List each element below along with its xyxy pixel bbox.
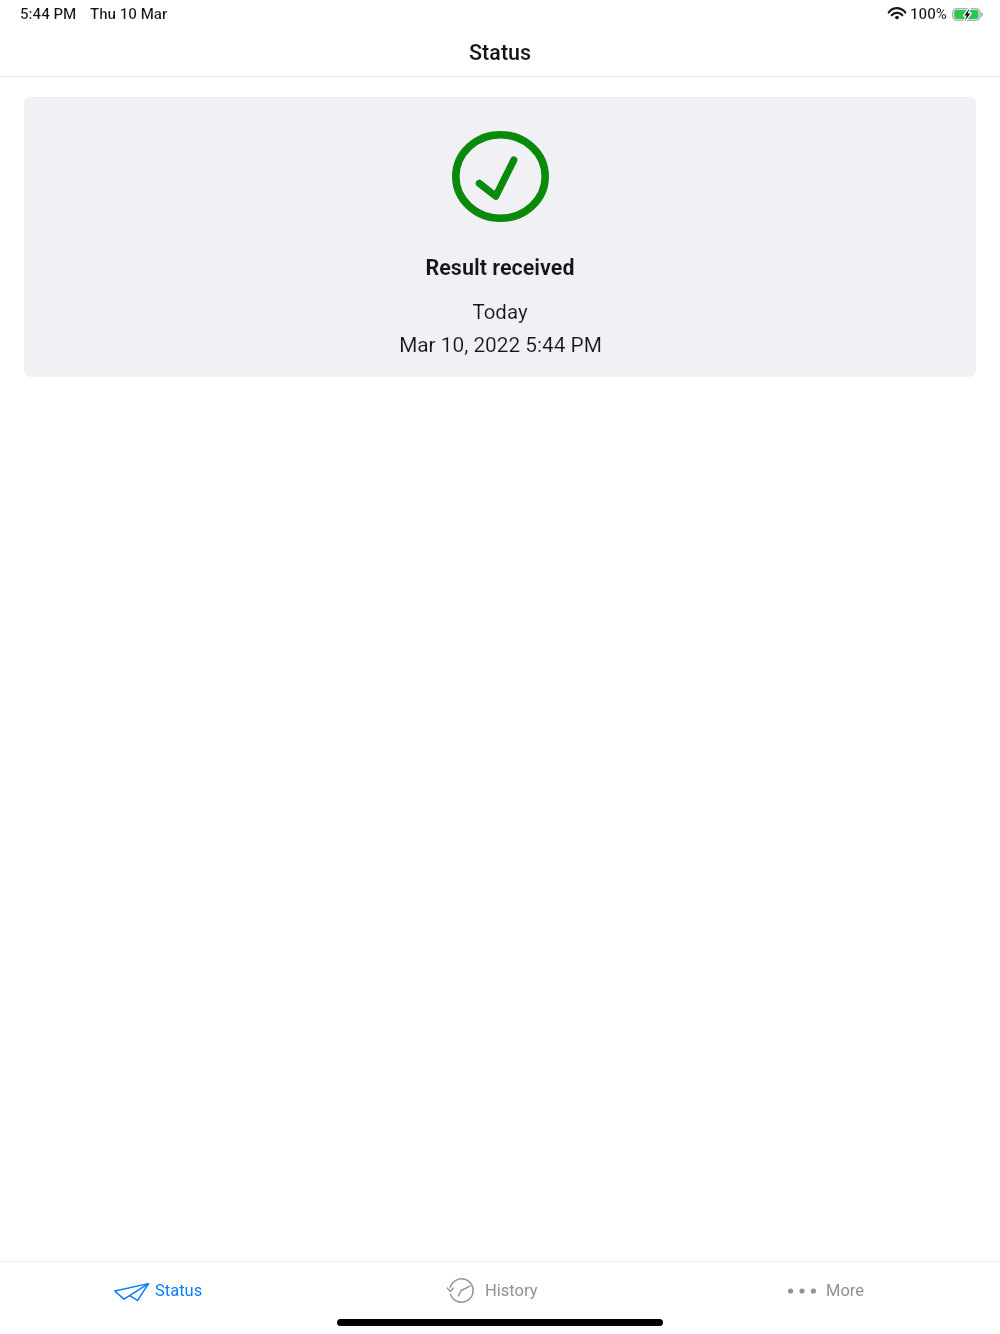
other: Status (114, 1283, 149, 1301)
button[interactable]: Status (0, 1262, 334, 1318)
button[interactable]: More (667, 1262, 1000, 1318)
other: More (788, 1286, 816, 1296)
button[interactable]: History (334, 1262, 667, 1318)
staticText: Mar 10, 2022 5:44 PM (399, 333, 602, 357)
staticText: More (826, 1281, 865, 1300)
other: History (449, 1278, 474, 1303)
staticText: Status (155, 1281, 203, 1300)
staticText: 5:44 PM (20, 5, 77, 23)
staticText: Result received (425, 255, 575, 280)
staticText: Status (469, 40, 532, 65)
button[interactable]: Result received (24, 97, 976, 377)
staticText: History (485, 1281, 538, 1300)
staticText: Today (472, 300, 528, 324)
staticText: 100% (910, 5, 947, 23)
staticText: Thu 10 Mar (90, 5, 168, 23)
